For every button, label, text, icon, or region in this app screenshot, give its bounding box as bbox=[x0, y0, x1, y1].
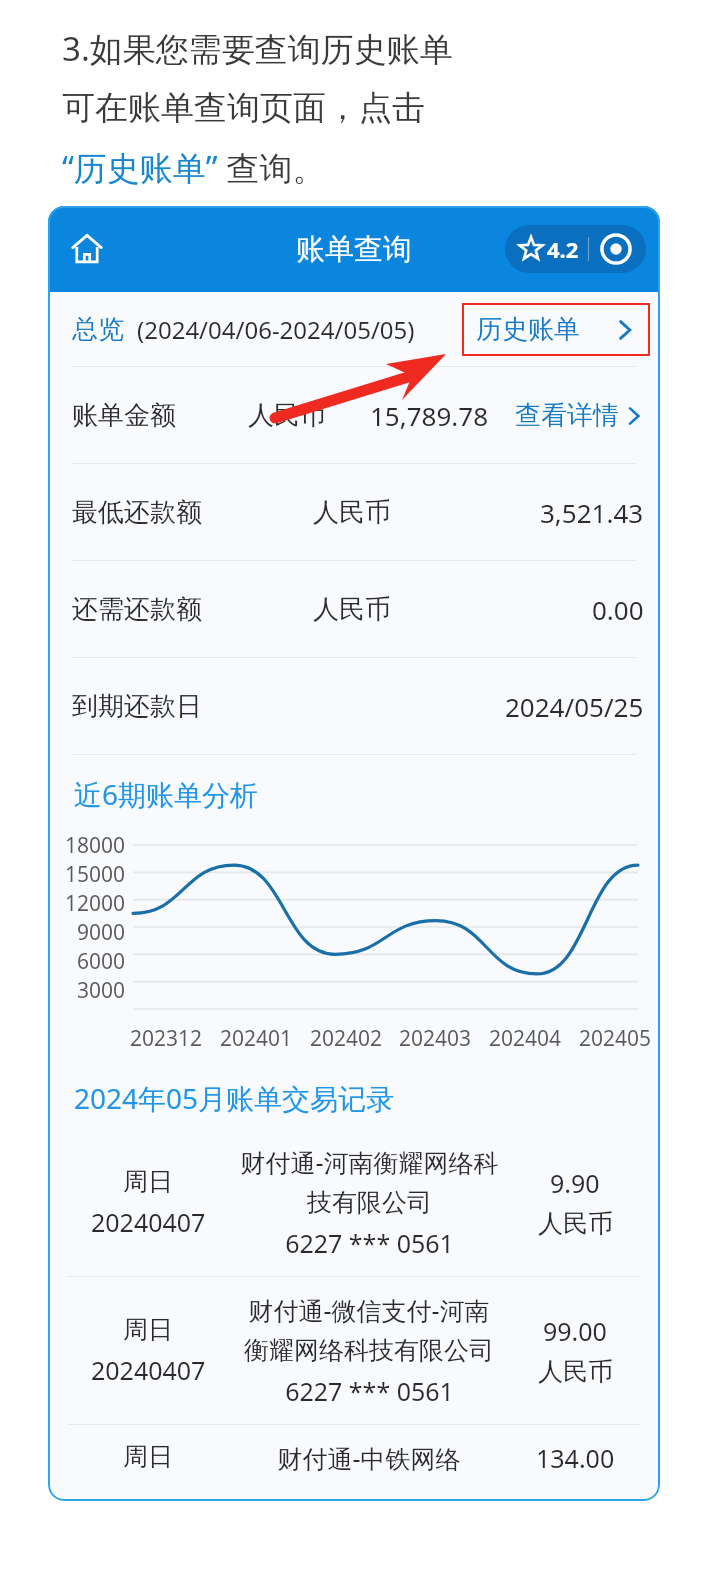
staticText: 财付通-中铁网络 bbox=[277, 1441, 461, 1475]
staticText: 查看详情 bbox=[515, 399, 619, 432]
staticText: 历史账单 bbox=[476, 313, 580, 346]
staticText: 202402 bbox=[310, 1024, 383, 1053]
staticText: 202405 bbox=[579, 1024, 652, 1053]
staticText: 人民币 bbox=[248, 399, 326, 432]
staticText: 3.如果您需要查询历史账单 bbox=[62, 26, 453, 71]
button[interactable]: 查看详情 bbox=[515, 399, 644, 432]
staticText: 查询。 bbox=[218, 145, 326, 190]
staticText: 账单查询 bbox=[296, 231, 412, 268]
staticText: 202401 bbox=[220, 1024, 293, 1053]
staticText: 20240407 bbox=[91, 1205, 206, 1239]
staticText: 202403 bbox=[399, 1024, 472, 1053]
staticText: 0.00 bbox=[592, 592, 644, 627]
staticText: 还需还款额 bbox=[72, 593, 202, 626]
staticText: 6227 *** 0561 bbox=[285, 1226, 454, 1260]
staticText: 总览 bbox=[72, 313, 124, 346]
button[interactable]: 历史账单 bbox=[476, 313, 636, 346]
staticText: 15000 bbox=[65, 860, 126, 889]
staticText: 衡耀网络科技有限公司 bbox=[244, 1335, 494, 1366]
staticText: 2024年05月账单交易记录 bbox=[74, 1079, 395, 1117]
staticText: “历史账单” bbox=[62, 145, 218, 190]
button[interactable]: 周日 bbox=[68, 1293, 640, 1408]
staticText: 近6期账单分析 bbox=[74, 775, 259, 813]
staticText: 4.2 bbox=[547, 234, 579, 264]
staticText: 人民币 bbox=[313, 593, 391, 626]
staticText: 技有限公司 bbox=[307, 1187, 432, 1218]
staticText: 202404 bbox=[489, 1024, 562, 1053]
staticText: (2024/04/06-2024/05/05) bbox=[137, 313, 415, 346]
staticText: 周日 bbox=[123, 1314, 173, 1345]
staticText: 99.00 bbox=[543, 1314, 607, 1348]
staticText: 20240407 bbox=[91, 1353, 206, 1387]
staticText: 9000 bbox=[77, 918, 126, 947]
staticText: 财付通-微信支付-河南 bbox=[248, 1293, 490, 1327]
staticText: 人民币 bbox=[538, 1356, 613, 1387]
button[interactable]: 4.2 bbox=[519, 225, 632, 273]
staticText: 3000 bbox=[77, 976, 126, 1005]
staticText: 2024/05/25 bbox=[505, 689, 644, 724]
staticText: 18000 bbox=[65, 831, 126, 860]
button[interactable]: 周日 bbox=[68, 1441, 640, 1485]
button[interactable]: Home bbox=[64, 226, 110, 272]
staticText: 人民币 bbox=[313, 496, 391, 529]
staticText: 9.90 bbox=[550, 1166, 600, 1200]
staticText: 134.00 bbox=[536, 1441, 615, 1475]
staticText: 6227 *** 0561 bbox=[285, 1374, 454, 1408]
staticText: 周日 bbox=[123, 1441, 173, 1472]
staticText: 6000 bbox=[77, 947, 126, 976]
staticText: 202312 bbox=[130, 1024, 203, 1053]
staticText: 15,789.78 bbox=[370, 398, 489, 433]
staticText: 12000 bbox=[65, 889, 126, 918]
staticText: 账单金额 bbox=[72, 399, 176, 432]
button[interactable]: 周日 bbox=[68, 1145, 640, 1260]
staticText: 到期还款日 bbox=[72, 690, 202, 723]
staticText: 可在账单查询页面，点击 bbox=[62, 87, 425, 129]
staticText: 最低还款额 bbox=[72, 496, 202, 529]
staticText: 3,521.43 bbox=[540, 495, 644, 530]
staticText: 人民币 bbox=[538, 1208, 613, 1239]
staticText: 财付通-河南衡耀网络科 bbox=[240, 1145, 499, 1179]
staticText: 周日 bbox=[123, 1166, 173, 1197]
